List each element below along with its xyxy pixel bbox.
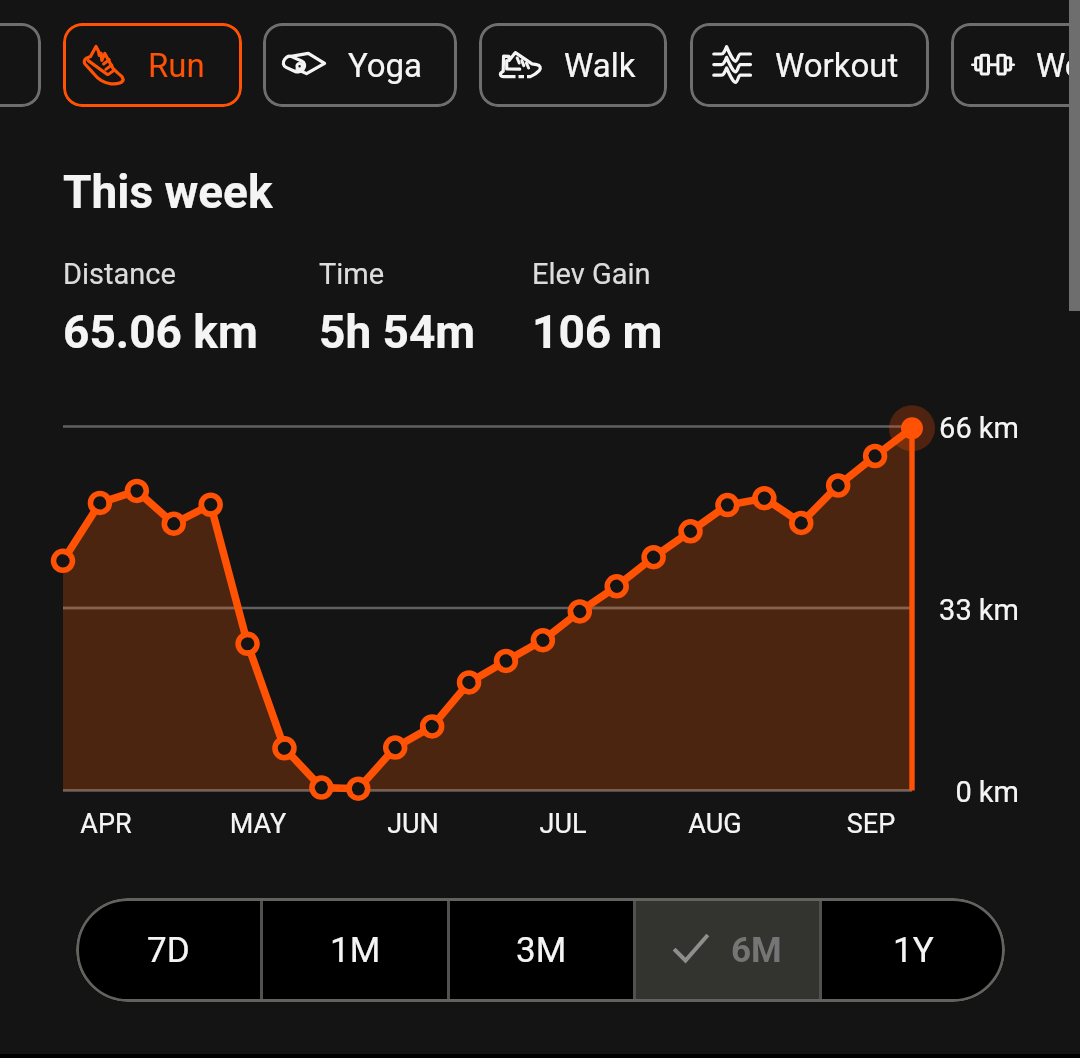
staticText: APR	[36, 808, 176, 840]
button[interactable]: Cycling	[0, 23, 41, 107]
other: Walk	[499, 43, 543, 87]
button[interactable]: Weights	[951, 23, 1080, 107]
staticText: 65.06 km	[63, 305, 258, 359]
other: Workout	[710, 43, 754, 87]
other: Weights	[971, 43, 1015, 87]
staticText: 1M	[330, 930, 381, 971]
other: Yoga	[283, 43, 327, 87]
staticText: Weights	[1036, 46, 1080, 85]
staticText: 106 m	[532, 305, 663, 359]
staticText: SEP	[801, 808, 941, 840]
staticText: JUN	[343, 808, 483, 840]
staticText: AUG	[645, 808, 785, 840]
staticText: This week	[63, 165, 273, 219]
staticText: 5h 54m	[319, 305, 476, 359]
staticText: MAY	[188, 808, 328, 840]
button[interactable]: 1M	[263, 898, 447, 1002]
other: Run	[83, 43, 127, 87]
button[interactable]: 6M	[636, 898, 819, 1002]
button[interactable]: 1Y	[822, 898, 1005, 1002]
staticText: Walk	[564, 46, 636, 85]
staticText: Time	[319, 257, 385, 291]
button[interactable]: Workout	[690, 23, 929, 107]
staticText: 7D	[147, 930, 190, 971]
staticText: Elev Gain	[532, 257, 651, 291]
button[interactable]: Yoga	[263, 23, 457, 107]
button[interactable]: 3M	[450, 898, 633, 1002]
staticText: 3M	[516, 930, 567, 971]
staticText: Workout	[775, 46, 899, 85]
staticText: JUL	[493, 808, 633, 840]
staticText: Distance	[63, 257, 176, 291]
button[interactable]: Walk	[479, 23, 667, 107]
staticText: Run	[148, 46, 205, 85]
staticText: 66 km	[899, 411, 1019, 445]
button[interactable]: Run	[63, 23, 242, 107]
staticText: 6M	[731, 930, 782, 971]
staticText: Yoga	[348, 46, 423, 85]
staticText: 1Y	[893, 930, 934, 971]
staticText: 33 km	[899, 593, 1019, 627]
staticText: 0 km	[899, 775, 1019, 809]
button[interactable]: 7D	[76, 898, 260, 1002]
